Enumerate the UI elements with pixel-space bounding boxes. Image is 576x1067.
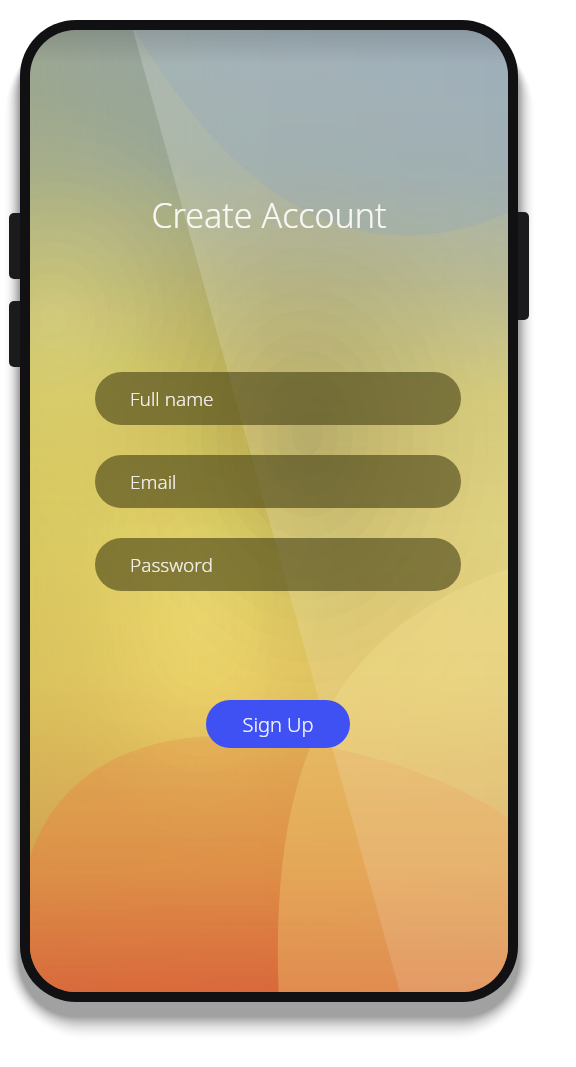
staticText: Full name xyxy=(130,386,214,412)
staticText: Password xyxy=(130,552,213,578)
staticText: Sign Up xyxy=(242,711,314,738)
staticText: Create Account xyxy=(151,192,387,238)
button[interactable]: Full name xyxy=(95,372,461,425)
button[interactable]: Sign Up xyxy=(206,700,350,748)
button[interactable]: Email xyxy=(95,455,461,508)
staticText: Email xyxy=(130,469,177,495)
button[interactable]: Password xyxy=(95,538,461,591)
